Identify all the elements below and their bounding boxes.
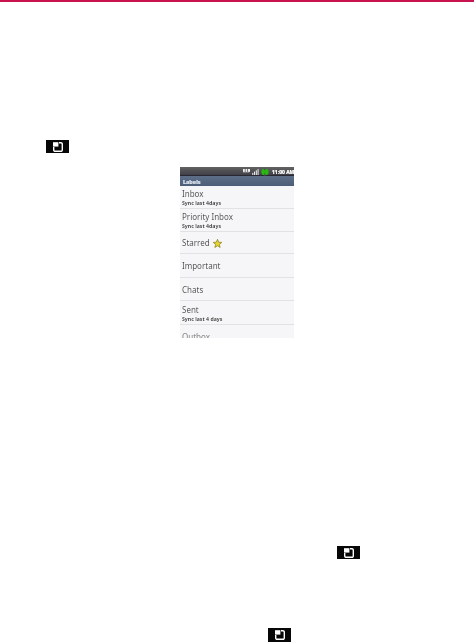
- staticText: Starred: [182, 237, 210, 248]
- staticText: Sent: [182, 304, 199, 315]
- staticText: Outbox: [182, 331, 210, 338]
- staticText: Important: [182, 260, 221, 271]
- button[interactable]: Outbox: [180, 325, 294, 338]
- button[interactable]: Copy: [46, 140, 69, 153]
- staticText: Sync last 4 days: [182, 315, 223, 322]
- button[interactable]: Starred: [180, 232, 294, 253]
- staticText: Chats: [182, 284, 204, 295]
- button[interactable]: Priority Inbox: [180, 209, 294, 231]
- staticText: Sync last 4days: [182, 199, 221, 206]
- button[interactable]: Copy: [337, 546, 360, 559]
- button[interactable]: Inbox: [180, 186, 294, 208]
- button[interactable]: Sent: [180, 301, 294, 324]
- button[interactable]: Chats: [180, 278, 294, 300]
- staticText: Labels: [183, 178, 201, 185]
- button[interactable]: Important: [180, 254, 294, 277]
- staticText: Sync last 4days: [182, 222, 221, 229]
- staticText: 11:00 AM: [272, 169, 294, 176]
- staticText: Priority Inbox: [182, 211, 233, 222]
- button[interactable]: Copy: [268, 628, 291, 642]
- staticText: Inbox: [182, 188, 204, 199]
